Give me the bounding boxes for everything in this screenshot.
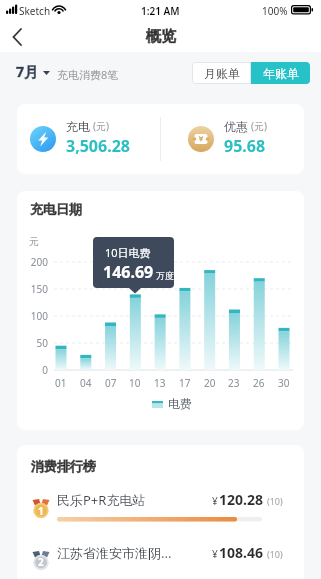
staticText: 元: [29, 235, 39, 248]
staticText: 概览: [146, 27, 176, 46]
staticText: 200: [30, 255, 48, 269]
staticText: (10): [267, 495, 283, 507]
staticText: 月账单: [204, 66, 240, 81]
button[interactable]: 年账单: [251, 62, 310, 84]
staticText: (10): [267, 548, 283, 560]
staticText: 万度: [156, 270, 174, 281]
staticText: 优惠: [224, 119, 248, 134]
staticText: 20: [204, 376, 216, 390]
button[interactable]: 月账单: [192, 62, 251, 84]
staticText: 30: [278, 376, 290, 390]
staticText: 年账单: [263, 66, 299, 81]
staticText: 13: [154, 376, 166, 390]
staticText: ¥: [212, 547, 218, 561]
staticText: 95.68: [224, 135, 266, 157]
staticText: 充电: [66, 119, 90, 134]
staticText: 消费排行榜: [31, 458, 96, 474]
staticText: 10: [129, 376, 141, 390]
staticText: 0: [42, 363, 48, 377]
staticText: 1:21 AM: [141, 4, 180, 18]
staticText: 民乐P+R充电站: [57, 491, 146, 509]
staticText: 100%: [262, 4, 288, 18]
staticText: 100: [30, 309, 48, 323]
staticText: 1: [38, 504, 44, 518]
button[interactable]: 优惠: [160, 104, 304, 174]
staticText: 120.28: [219, 490, 263, 509]
staticText: 7月: [16, 62, 39, 81]
staticText: 108.46: [219, 543, 263, 562]
staticText: 04: [80, 376, 92, 390]
staticText: 2: [38, 555, 44, 569]
staticText: ¥: [212, 494, 218, 508]
staticText: 17: [179, 376, 191, 390]
staticText: 3,506.28: [66, 135, 130, 157]
staticText: 江苏省淮安市淮阴...: [57, 544, 172, 562]
staticText: 10日电费: [105, 245, 151, 260]
staticText: 07: [105, 376, 117, 390]
staticText: 23: [228, 376, 240, 390]
staticText: 电费: [168, 396, 192, 411]
staticText: 充电日期: [30, 201, 82, 217]
staticText: (元): [251, 119, 267, 133]
staticText: 概览: [146, 27, 176, 46]
button[interactable]: [0, 20, 32, 52]
staticText: 充电消费8笔: [57, 67, 119, 82]
staticText: 146.69: [103, 261, 154, 283]
staticText: 26: [253, 376, 265, 390]
staticText: 充电日期: [30, 201, 82, 217]
staticText: 50: [36, 336, 48, 350]
staticText: 消费排行榜: [31, 458, 96, 474]
button[interactable]: 2: [17, 541, 304, 579]
staticText: 01: [55, 376, 67, 390]
staticText: (元): [93, 119, 109, 133]
button[interactable]: 7月: [16, 62, 51, 81]
staticText: Sketch: [19, 4, 51, 18]
staticText: 7月: [16, 62, 39, 81]
button[interactable]: 1: [17, 488, 304, 526]
button[interactable]: 充电: [17, 104, 160, 174]
staticText: 150: [30, 282, 48, 296]
